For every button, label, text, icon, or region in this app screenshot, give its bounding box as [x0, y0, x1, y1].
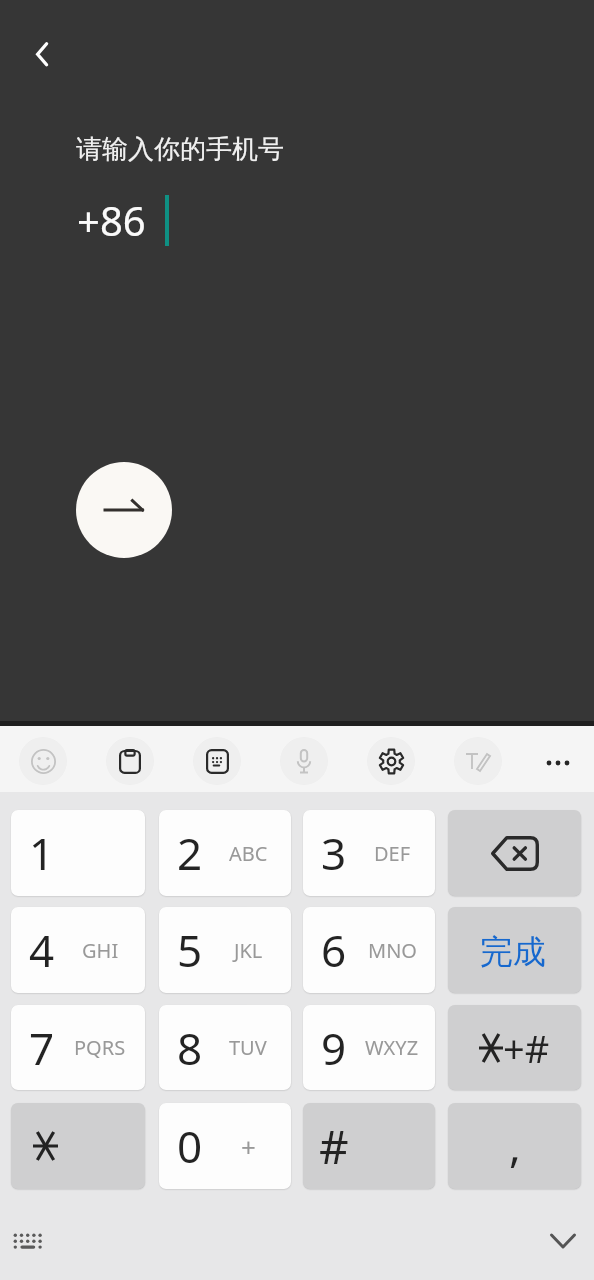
button[interactable]: Hide keyboard [539, 1216, 587, 1264]
staticText: 5 [177, 920, 203, 980]
staticText: 3 [321, 823, 347, 883]
staticText: 4 [29, 920, 55, 980]
staticText: , [509, 1115, 521, 1175]
button[interactable]: Comma [448, 1103, 581, 1189]
button[interactable]: 8 [159, 1005, 291, 1090]
button[interactable]: Star plus hash [448, 1005, 581, 1090]
staticText: 6 [321, 920, 347, 980]
button[interactable]: 6 [303, 907, 435, 993]
button[interactable]: Backspace [448, 810, 581, 896]
staticText: 完成 [480, 931, 546, 973]
button[interactable]: Done [448, 907, 581, 993]
staticText: +86 [77, 193, 146, 247]
staticText: 8 [177, 1018, 203, 1078]
staticText: 1 [29, 823, 55, 883]
staticText: 7 [29, 1018, 55, 1078]
staticText: JKL [234, 937, 263, 964]
button[interactable]: Clipboard [106, 737, 154, 785]
staticText: # [319, 1115, 349, 1178]
button[interactable]: 0 [159, 1103, 291, 1189]
button[interactable]: Next [76, 462, 172, 558]
button[interactable]: Settings [367, 737, 415, 785]
button[interactable]: 9 [303, 1005, 435, 1090]
button[interactable]: 7 [11, 1005, 145, 1090]
button[interactable]: 1 [11, 810, 145, 896]
button[interactable]: Voice input [280, 737, 328, 785]
staticText: GHI [82, 937, 119, 964]
button[interactable]: Hash [303, 1103, 435, 1189]
staticText: PQRS [74, 1034, 126, 1061]
staticText: 请输入你的手机号 [76, 133, 284, 166]
staticText: WXYZ [365, 1034, 419, 1061]
button[interactable]: Switch input method [11, 1227, 51, 1261]
staticText: 0 [177, 1116, 203, 1176]
button[interactable]: Handwriting [454, 737, 502, 785]
staticText: ABC [229, 840, 268, 867]
button[interactable]: 4 [11, 907, 145, 993]
staticText: 9 [321, 1018, 347, 1078]
button[interactable]: Number pad [193, 737, 241, 785]
button[interactable]: 2 [159, 810, 291, 896]
staticText: MNO [368, 937, 417, 964]
button[interactable]: Star [11, 1103, 145, 1189]
button[interactable]: Back [12, 31, 68, 87]
staticText: +# [503, 1022, 550, 1074]
staticText: + [241, 1129, 256, 1164]
button[interactable]: Emoji [19, 737, 67, 785]
staticText: 2 [177, 823, 203, 883]
button[interactable]: 5 [159, 907, 291, 993]
button[interactable]: 3 [303, 810, 435, 896]
staticText: TUV [229, 1034, 267, 1061]
button[interactable]: More options [533, 738, 583, 788]
staticText: DEF [374, 840, 411, 867]
